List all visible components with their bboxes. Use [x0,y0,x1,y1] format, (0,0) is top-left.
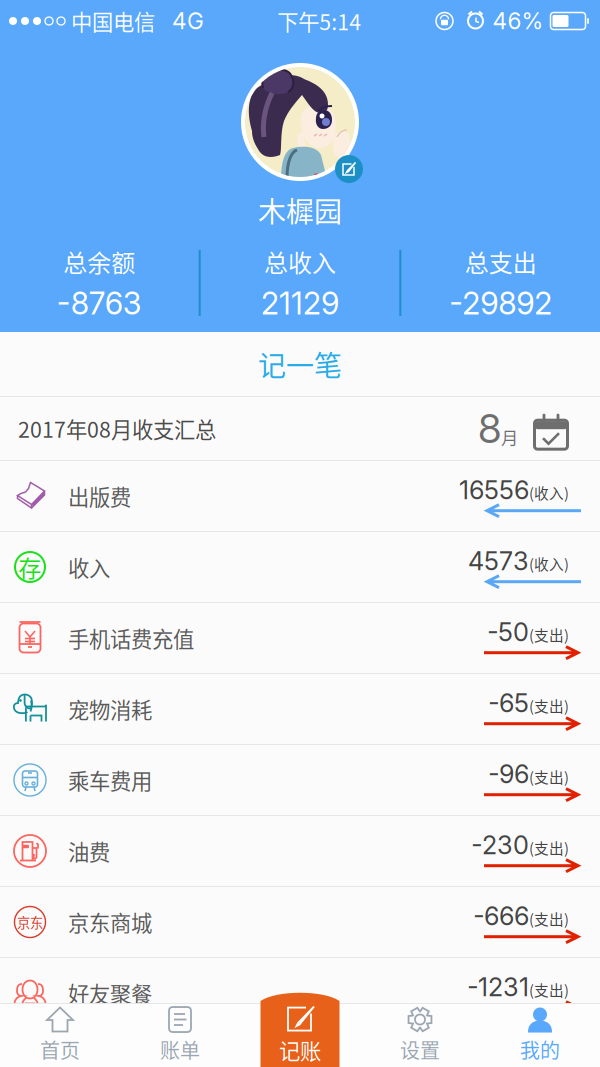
staticText: 乘车费用 [68,765,152,795]
staticText: 油费 [68,836,110,866]
staticText: 8 [478,404,501,453]
staticText: -8763 [57,285,142,322]
staticText: 中国电信 [71,6,155,36]
button[interactable]: 8 [478,404,570,453]
staticText: 京东 [17,912,43,932]
staticText: 2017年08月收支汇总 [18,413,216,444]
staticText: (支出) [529,766,569,787]
staticText: 4G [172,7,204,35]
staticText: 出版费 [68,481,131,511]
button[interactable]: 我的 [480,1003,600,1067]
staticText: (支出) [529,624,569,645]
button[interactable]: 记账 [260,993,339,1067]
staticText: 首页 [40,1035,80,1064]
staticText: 21129 [261,285,339,322]
staticText: 记账 [279,1035,321,1065]
staticText: 宠物消耗 [68,694,152,724]
staticText: 收入 [68,552,110,582]
button[interactable]: 记账 [240,1003,360,1067]
staticText: 记一笔 [258,344,342,384]
staticText: 手机话费充值 [68,623,194,653]
button[interactable]: 乘车费用 [0,745,600,816]
staticText: (支出) [529,979,569,1000]
button[interactable]: 首页 [0,1003,120,1067]
staticText: 总收入 [264,244,336,279]
staticText: 46% [492,7,543,35]
staticText: (支出) [529,837,569,858]
staticText: (支出) [529,695,569,716]
button[interactable]: 账单 [120,1003,240,1067]
staticText: 记账 [280,1035,320,1064]
staticText: (支出) [529,908,569,929]
button[interactable]: 记一笔 [0,332,600,396]
staticText: -230 [471,830,529,860]
button[interactable]: 设置 [360,1003,480,1067]
staticText: 好友聚餐 [68,978,152,1008]
button[interactable]: 存 [0,532,600,603]
button[interactable]: 好友聚餐 [0,958,600,1029]
staticText: -96 [488,759,529,789]
staticText: 账单 [160,1035,200,1064]
staticText: -1231 [467,972,529,1002]
staticText: -50 [487,617,529,647]
staticText: 总支出 [465,244,537,279]
staticText: 下午5:14 [277,6,361,36]
button[interactable]: 宠物消耗 [0,674,600,745]
staticText: -666 [473,901,529,931]
button[interactable]: 油费 [0,816,600,887]
staticText: (收入) [529,482,569,503]
staticText: 京东商城 [68,907,152,937]
staticText: 设置 [400,1035,440,1064]
staticText: 木樨园 [258,190,342,230]
staticText: -29892 [449,285,552,322]
button[interactable]: 京东 [0,887,600,958]
staticText: 4573 [468,546,529,576]
staticText: -65 [488,688,529,718]
button[interactable]: 手机话费充值 [0,603,600,674]
staticText: 总余额 [63,244,135,279]
button[interactable]: 出版费 [0,461,600,532]
staticText: 月 [501,425,518,450]
staticText: (收入) [529,553,569,574]
staticText: 我的 [520,1035,560,1064]
staticText: 存 [18,551,41,583]
staticText: 16556 [459,475,529,505]
